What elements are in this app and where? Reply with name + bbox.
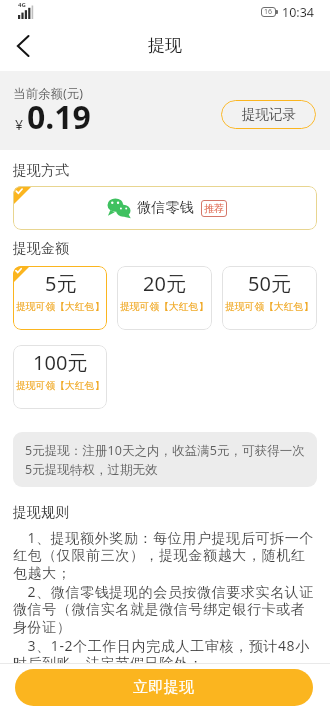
staticText: 提现记录 [242,106,296,123]
button[interactable]: 提现记录 [221,100,316,129]
button[interactable]: 微信零钱 [13,186,317,230]
staticText: 提现可领【大红包】 [16,380,105,392]
staticText: 5元提现：注册10天之内，收益满5元，可获得一次5元提现特权，过期无效 [25,442,308,478]
staticText: 1、提现额外奖励：每位用户提现后可拆一个红包（仅限前三次），提现金额越大，随机红… [13,528,317,663]
staticText: 提现金额 [13,240,69,258]
staticText: 立即提现 [133,678,195,697]
staticText: 20元 [143,270,186,297]
button[interactable]: 100元 [13,345,107,409]
staticText: 0.19 [27,95,91,139]
staticText: 推荐 [204,202,224,215]
staticText: 5元 [45,270,77,297]
button[interactable]: 立即提现 [15,669,313,706]
button[interactable]: Back [5,28,41,64]
button[interactable]: 20元 [117,266,212,330]
staticText: 10:34 [282,4,314,20]
staticText: 提现规则 [13,504,69,522]
button[interactable]: 5元 [13,266,107,330]
staticText: 提现可领【大红包】 [16,301,105,313]
staticText: 16 [264,7,273,17]
staticText: 微信零钱 [137,199,194,217]
staticText: 提现可领【大红包】 [120,301,209,313]
staticText: 提现方式 [13,162,69,180]
staticText: 当前余额(元) [13,85,84,102]
button[interactable]: 50元 [222,266,317,330]
staticText: ¥ [15,115,24,134]
staticText: 4G [18,1,26,9]
staticText: 提现 [148,35,182,56]
staticText: 100元 [33,349,88,376]
staticText: 提现可领【大红包】 [225,301,314,313]
staticText: 50元 [248,270,291,297]
